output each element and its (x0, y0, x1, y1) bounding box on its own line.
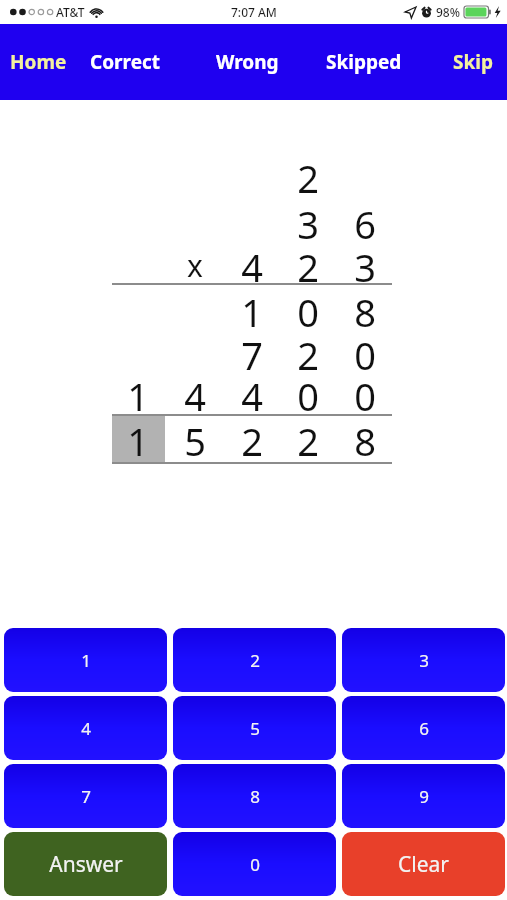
staticText: 2 (241, 415, 263, 463)
staticText: AT&T (56, 4, 85, 20)
staticText: 3 (354, 241, 376, 289)
button[interactable]: 2 (173, 628, 336, 692)
staticText: 0 (354, 329, 376, 377)
staticText: 2 (297, 415, 319, 463)
staticText: Wrong (216, 49, 279, 75)
staticText: 2 (250, 649, 260, 672)
staticText: Clear (398, 850, 449, 879)
staticText: 1 (241, 286, 263, 334)
staticText: 1 (127, 370, 149, 418)
button[interactable]: Clear (342, 832, 505, 896)
staticText: Skip (453, 49, 493, 75)
staticText: 9 (419, 785, 429, 808)
button[interactable]: 3 (342, 628, 505, 692)
staticText: 8 (250, 785, 260, 808)
button[interactable]: Answer (4, 832, 167, 896)
staticText: 1 (81, 649, 91, 672)
staticText: 0 (354, 370, 376, 418)
staticText: 8 (354, 286, 376, 334)
staticText: 1 (127, 415, 149, 463)
staticText: 6 (419, 717, 429, 740)
staticText: 7 (81, 785, 91, 808)
staticText: 8 (354, 415, 376, 463)
button[interactable] (112, 416, 165, 462)
button[interactable]: 9 (342, 764, 505, 828)
button[interactable]: Correct (84, 43, 167, 81)
staticText: 2 (297, 329, 319, 377)
button[interactable]: Skip (447, 43, 499, 81)
staticText: 4 (184, 370, 206, 418)
staticText: 7 (241, 329, 263, 377)
button[interactable]: Home (4, 43, 73, 81)
staticText: 4 (241, 241, 263, 289)
staticText: 3 (297, 198, 319, 246)
button[interactable]: 5 (173, 696, 336, 760)
staticText: Answer (49, 850, 123, 879)
staticText: 2 (297, 152, 319, 200)
staticText: 5 (250, 717, 260, 740)
button[interactable]: Skipped (320, 43, 408, 81)
button[interactable]: 7 (4, 764, 167, 828)
staticText: 6 (354, 198, 376, 246)
staticText: 0 (297, 370, 319, 418)
staticText: 0 (250, 853, 260, 876)
staticText: 7:07 AM (231, 4, 277, 20)
staticText: 4 (81, 717, 91, 740)
staticText: 0 (297, 286, 319, 334)
staticText: Skipped (326, 49, 402, 75)
staticText: 98% (436, 4, 460, 20)
button[interactable]: 6 (342, 696, 505, 760)
button[interactable]: 4 (4, 696, 167, 760)
button[interactable]: 1 (4, 628, 167, 692)
button[interactable]: 8 (173, 764, 336, 828)
staticText: Correct (90, 49, 161, 75)
staticText: 2 (297, 241, 319, 289)
staticText: x (187, 245, 203, 286)
staticText: 4 (241, 370, 263, 418)
button[interactable]: Wrong (210, 43, 285, 81)
staticText: 5 (184, 415, 206, 463)
button[interactable]: 0 (173, 832, 336, 896)
staticText: 3 (419, 649, 429, 672)
staticText: Home (10, 49, 67, 75)
